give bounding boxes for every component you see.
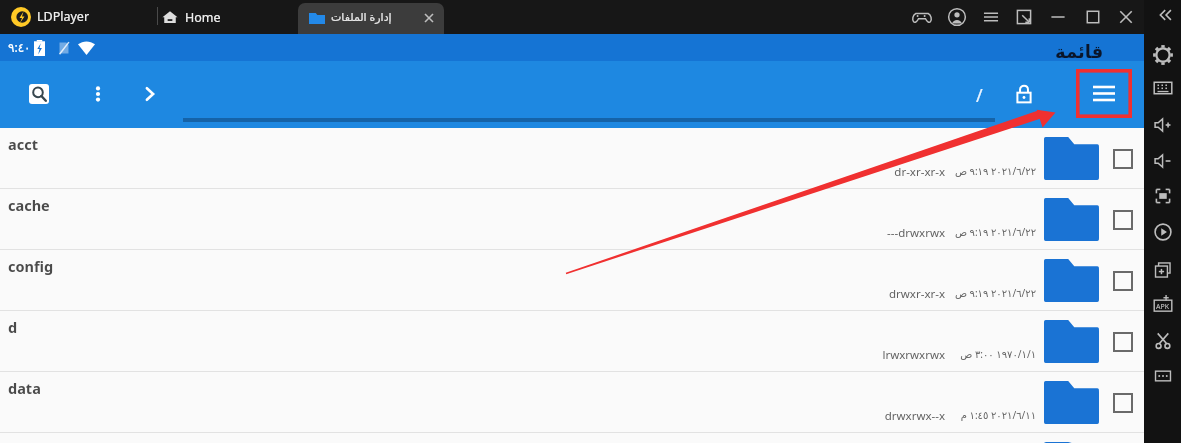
staticText: data: [8, 378, 41, 398]
button[interactable]: Close: [1112, 3, 1140, 31]
staticText: APK: [1156, 302, 1170, 312]
button[interactable]: Forward: [138, 82, 162, 106]
button[interactable]: Install APK: [1148, 290, 1177, 319]
button[interactable]: Screenshot: [1148, 325, 1177, 354]
button[interactable]: Select: [1113, 210, 1133, 230]
button[interactable]: Fullscreen: [1148, 181, 1177, 210]
staticText: drwxr-xr-x: [745, 286, 945, 302]
staticText: ٢٠٢١/٦/٢٢ ٩:١٩ ص: [836, 164, 1036, 178]
button[interactable]: Collapse: [1148, 0, 1177, 29]
staticText: ٩:٤٠: [8, 39, 1152, 55]
button[interactable]: d: [0, 311, 1144, 372]
button[interactable]: Select: [1113, 332, 1133, 352]
button[interactable]: Close tab: [421, 10, 437, 26]
button[interactable]: More options: [86, 82, 110, 106]
staticText: Home: [185, 9, 221, 26]
staticText: ٢٠٢١/٦/٢٢ ٩:١٩ ص: [836, 286, 1036, 300]
button[interactable]: Search: [29, 84, 49, 104]
button[interactable]: Account: [943, 3, 971, 31]
button[interactable]: Select: [0, 433, 1144, 443]
staticText: drwxrwx--x: [745, 408, 945, 424]
button[interactable]: Select: [1113, 271, 1133, 291]
button[interactable]: config: [0, 250, 1144, 311]
staticText: ٢٠٢١/٦/٢٢ ٩:١٩ ص: [836, 225, 1036, 239]
button[interactable]: Settings: [1148, 40, 1177, 69]
button[interactable]: Volume up: [1148, 110, 1177, 139]
staticText: lrwxrwxrwx: [745, 347, 945, 363]
button[interactable]: Select: [1113, 393, 1133, 413]
button[interactable]: Games: [908, 3, 936, 31]
staticText: إدارة الملفات: [331, 9, 444, 24]
button[interactable]: More: [1148, 361, 1177, 390]
staticText: قائمة: [1055, 41, 1181, 62]
button[interactable]: Read only: [1013, 83, 1035, 105]
button[interactable]: data: [0, 372, 1144, 433]
button[interactable]: Home: [160, 0, 290, 34]
button[interactable]: Minimize: [1044, 3, 1072, 31]
button[interactable]: Resize: [1010, 3, 1038, 31]
button[interactable]: acct: [0, 128, 1144, 189]
staticText: ---drwxrwx: [745, 225, 945, 241]
staticText: config: [8, 256, 54, 276]
button[interactable]: Rotate: [1148, 217, 1177, 246]
button[interactable]: إدارة الملفات: [298, 3, 444, 34]
button[interactable]: Keyboard: [1148, 73, 1177, 102]
staticText: /: [976, 83, 983, 108]
button[interactable]: Menu: [977, 3, 1005, 31]
button[interactable]: Volume down: [1148, 146, 1177, 175]
staticText: dr-xr-xr-x: [745, 164, 945, 180]
button[interactable]: Select: [1113, 149, 1133, 169]
staticText: cache: [8, 195, 50, 215]
staticText: d: [8, 317, 18, 337]
button[interactable]: Menu: [1076, 69, 1132, 118]
staticText: ١٩٧٠/١/١ ٣:٠٠ ص: [836, 347, 1036, 361]
button[interactable]: New window: [1148, 255, 1177, 284]
staticText: ٢٠٢١/٦/١١ ١:٤٥ م: [836, 408, 1036, 422]
button[interactable]: Maximize: [1079, 3, 1107, 31]
staticText: acct: [8, 134, 38, 154]
staticText: LDPlayer: [37, 8, 90, 25]
button[interactable]: cache: [0, 189, 1144, 250]
